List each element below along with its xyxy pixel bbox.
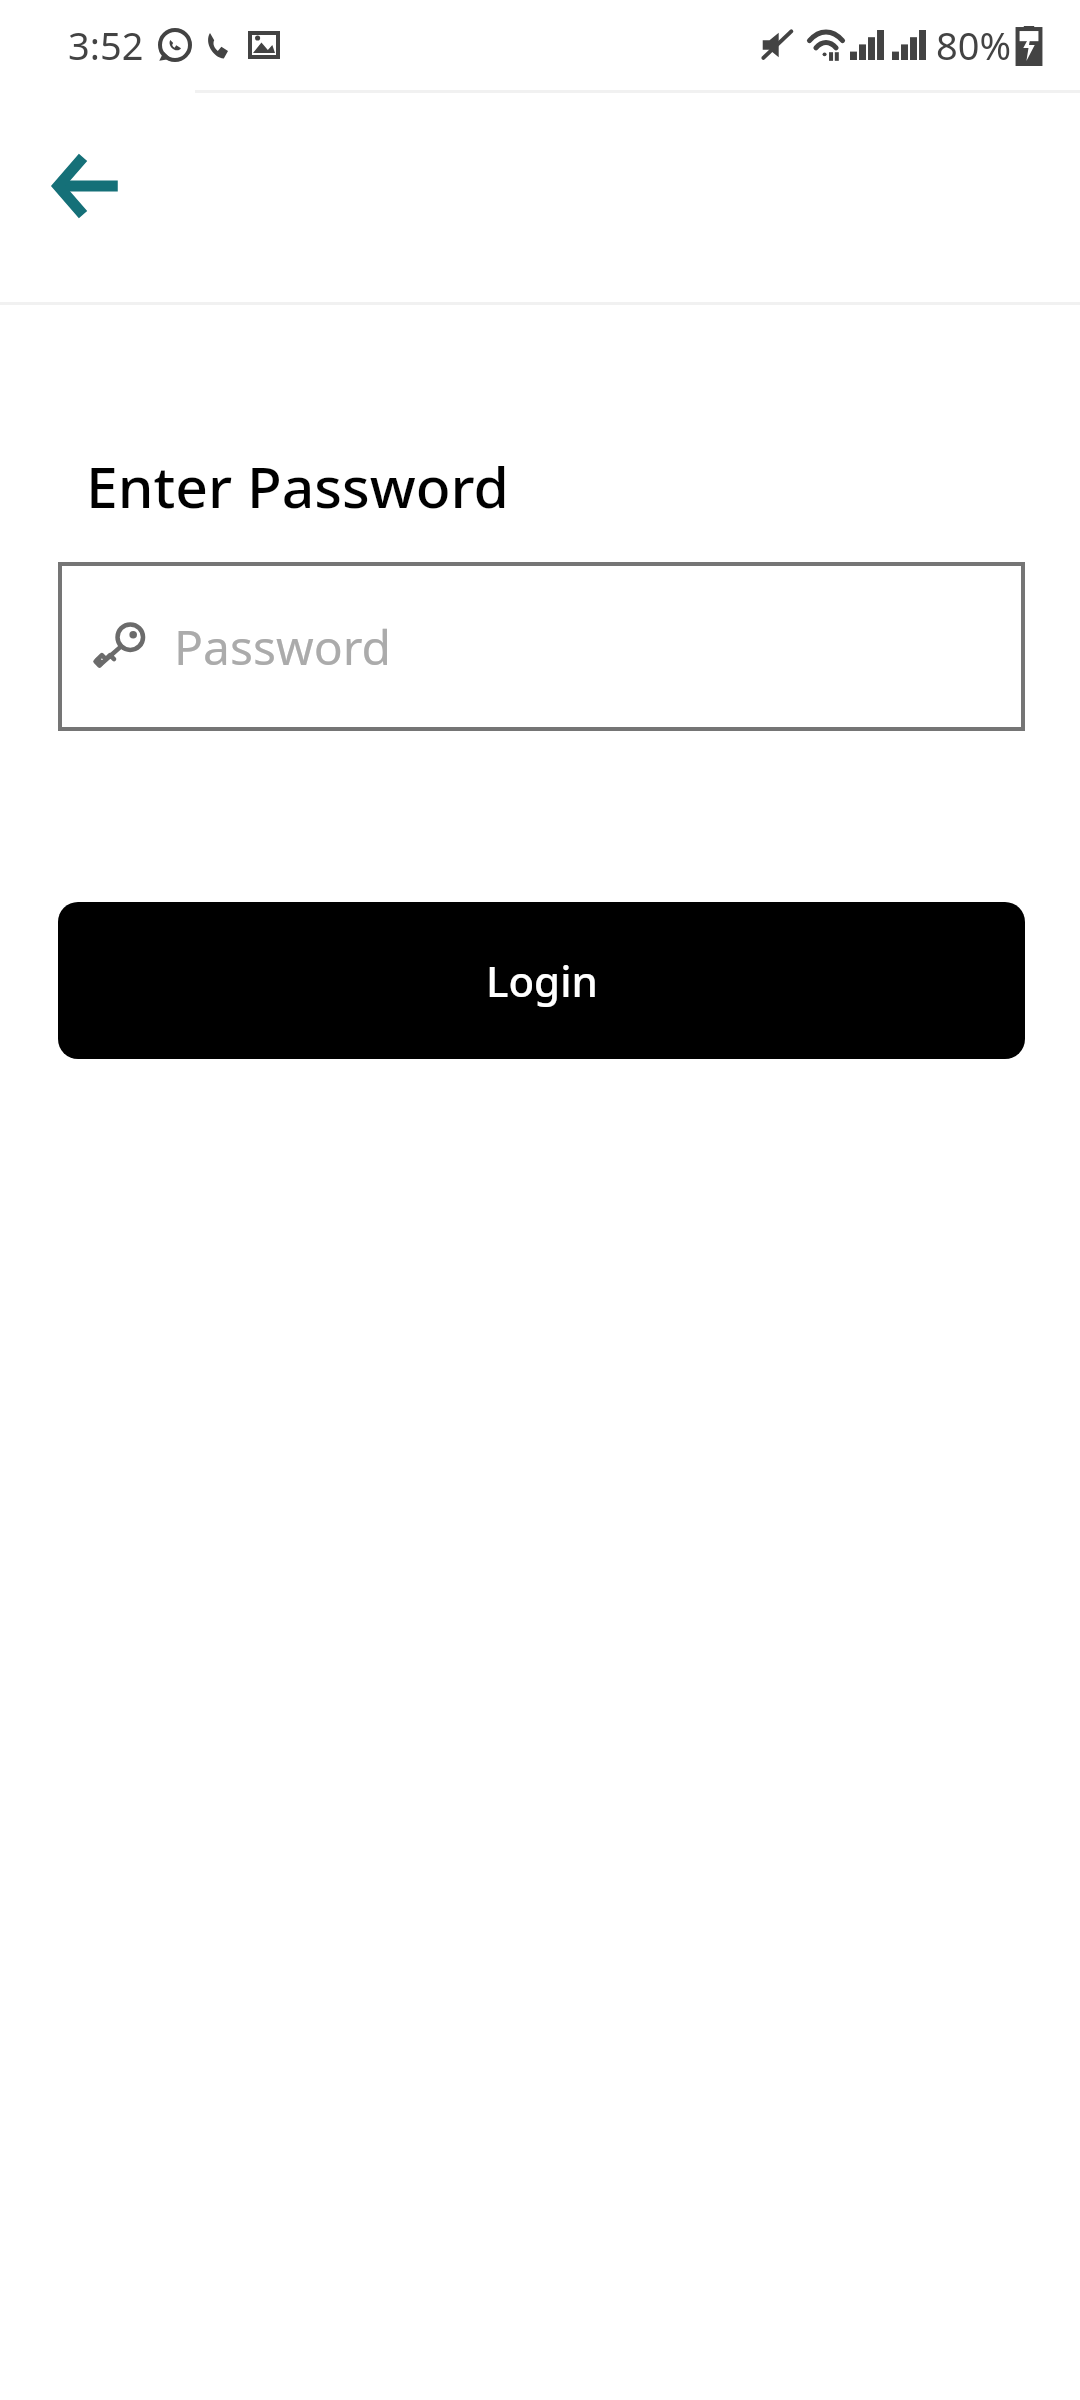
button[interactable]: Password bbox=[58, 562, 1025, 731]
staticText: Password bbox=[174, 614, 392, 679]
staticText: 80% bbox=[936, 19, 1012, 71]
staticText: Enter Password bbox=[86, 447, 509, 525]
staticText: 3:52 bbox=[68, 19, 144, 71]
button[interactable]: Back bbox=[40, 138, 136, 234]
button[interactable]: Login bbox=[58, 902, 1025, 1059]
staticText: Login bbox=[486, 952, 598, 1009]
